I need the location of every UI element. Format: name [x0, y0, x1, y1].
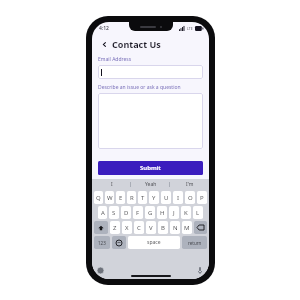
button[interactable]: T [138, 191, 147, 204]
button[interactable]: Submit [98, 161, 203, 175]
button[interactable]: I'm [170, 179, 209, 190]
button[interactable]: Shift [94, 221, 108, 234]
button[interactable]: B [158, 221, 168, 234]
staticText: Y [152, 194, 156, 202]
button[interactable]: H [157, 206, 167, 219]
button[interactable]: R [127, 191, 136, 204]
button[interactable]: Change keyboard [96, 266, 105, 275]
staticText: I [177, 194, 180, 202]
staticText: G [148, 209, 153, 217]
staticText: E [119, 194, 123, 202]
button[interactable]: return [182, 236, 207, 249]
button[interactable]: space [128, 236, 180, 249]
staticText: N [173, 224, 178, 232]
staticText: P [200, 194, 204, 202]
button[interactable]: S [109, 206, 119, 219]
staticText: Q [96, 194, 101, 202]
button[interactable]: F [133, 206, 143, 219]
staticText: U [164, 194, 169, 202]
staticText: B [161, 224, 165, 232]
staticText: J [173, 209, 175, 217]
staticText: Email Address [98, 56, 132, 63]
button[interactable]: V [146, 221, 156, 234]
staticText: return [188, 240, 202, 246]
button[interactable]: N [170, 221, 180, 234]
staticText: Contact Us [112, 38, 161, 50]
button[interactable] [98, 93, 203, 149]
staticText: M [184, 224, 190, 232]
button[interactable]: A [98, 206, 107, 219]
button[interactable]: L [193, 206, 203, 219]
button[interactable]: Y [149, 191, 159, 204]
button[interactable]: P [197, 191, 207, 204]
staticText: Z [113, 224, 117, 232]
staticText: W [107, 194, 113, 202]
button[interactable]: I [92, 179, 131, 190]
button[interactable] [98, 65, 203, 79]
button[interactable]: Q [94, 191, 103, 204]
button[interactable]: I [173, 191, 183, 204]
button[interactable]: C [134, 221, 144, 234]
staticText: L [196, 209, 200, 217]
staticText: A [101, 209, 105, 217]
button[interactable]: Emoji [112, 236, 126, 249]
button[interactable]: Dictate [195, 266, 204, 275]
button[interactable]: K [181, 206, 191, 219]
button[interactable]: Yeah [131, 179, 170, 190]
staticText: X [125, 224, 129, 232]
staticText: T [141, 194, 145, 202]
staticText: Describe an issue or ask a question [98, 84, 181, 91]
button[interactable]: Back [99, 39, 109, 49]
staticText: 123 [98, 240, 106, 246]
staticText: H [160, 209, 165, 217]
button[interactable]: D [121, 206, 131, 219]
staticText: 4:12 [99, 25, 109, 32]
button[interactable]: E [116, 191, 125, 204]
staticText: space [147, 239, 161, 246]
staticText: Submit [140, 164, 161, 172]
staticText: I [111, 181, 113, 188]
staticText: LTE [187, 26, 193, 31]
staticText: C [137, 224, 141, 232]
button[interactable]: 123 [94, 236, 110, 249]
button[interactable]: Z [110, 221, 120, 234]
staticText: S [112, 209, 116, 217]
button[interactable]: J [169, 206, 179, 219]
staticText: V [149, 224, 153, 232]
staticText: K [184, 209, 188, 217]
staticText: D [124, 209, 129, 217]
button[interactable]: X [122, 221, 132, 234]
staticText: F [136, 209, 140, 217]
button[interactable]: O [185, 191, 195, 204]
staticText: Yeah [145, 181, 157, 188]
button[interactable]: G [145, 206, 155, 219]
staticText: O [188, 194, 193, 202]
staticText: R [130, 194, 134, 202]
button[interactable]: M [182, 221, 192, 234]
button[interactable]: W [105, 191, 114, 204]
button[interactable]: U [161, 191, 171, 204]
staticText: I'm [186, 181, 194, 188]
button[interactable]: Backspace [194, 221, 207, 234]
